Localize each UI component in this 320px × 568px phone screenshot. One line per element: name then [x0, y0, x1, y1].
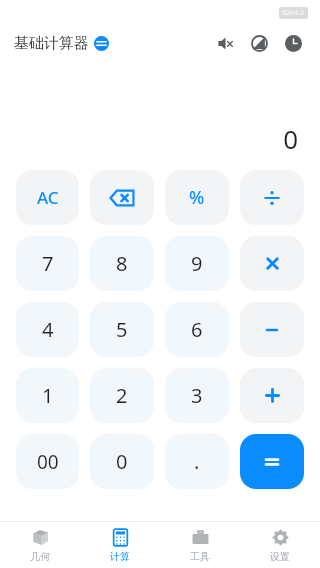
- button[interactable]: 1: [16, 368, 79, 423]
- button[interactable]: 几何: [0, 522, 80, 568]
- staticText: 0: [116, 448, 128, 475]
- staticText: 00: [37, 449, 59, 475]
- staticText: AC: [37, 186, 59, 209]
- button[interactable]: 设置: [240, 522, 320, 568]
- button[interactable]: 9: [165, 236, 229, 291]
- staticText: 3: [191, 382, 203, 409]
- button[interactable]: 5: [90, 302, 154, 357]
- button[interactable]: .: [165, 434, 229, 489]
- staticText: 几何: [30, 550, 50, 563]
- staticText: 9: [191, 250, 203, 277]
- button[interactable]: 工具: [160, 522, 240, 568]
- staticText: 92e4-0: [282, 8, 305, 18]
- button[interactable]: [240, 170, 304, 225]
- staticText: 计算: [110, 550, 130, 563]
- button[interactable]: 3: [165, 368, 229, 423]
- staticText: 6: [191, 316, 203, 343]
- button[interactable]: 0: [90, 434, 154, 489]
- button[interactable]: Backspace: [90, 170, 154, 225]
- button[interactable]: 2: [90, 368, 154, 423]
- staticText: 设置: [270, 550, 290, 563]
- button[interactable]: [240, 302, 304, 357]
- staticText: .: [194, 448, 200, 475]
- button[interactable]: 00: [16, 434, 79, 489]
- button[interactable]: 4: [16, 302, 79, 357]
- staticText: 基础计算器: [14, 34, 89, 53]
- staticText: 7: [42, 250, 54, 277]
- button[interactable]: [240, 434, 304, 489]
- button[interactable]: History: [280, 30, 306, 56]
- button[interactable]: AC: [16, 170, 79, 225]
- button[interactable]: %: [165, 170, 229, 225]
- staticText: 1: [42, 382, 54, 409]
- staticText: 4: [42, 316, 54, 343]
- button[interactable]: [240, 368, 304, 423]
- button[interactable]: 8: [90, 236, 154, 291]
- button[interactable]: Theme: [246, 30, 272, 56]
- staticText: 5: [116, 316, 128, 343]
- button[interactable]: 7: [16, 236, 79, 291]
- staticText: 0: [283, 121, 298, 156]
- button[interactable]: 计算: [80, 522, 160, 568]
- button[interactable]: Mute: [212, 30, 238, 56]
- staticText: %: [189, 185, 205, 210]
- button[interactable]: [240, 236, 304, 291]
- staticText: 2: [116, 382, 128, 409]
- button[interactable]: 6: [165, 302, 229, 357]
- staticText: 8: [116, 250, 128, 277]
- staticText: 工具: [190, 550, 210, 563]
